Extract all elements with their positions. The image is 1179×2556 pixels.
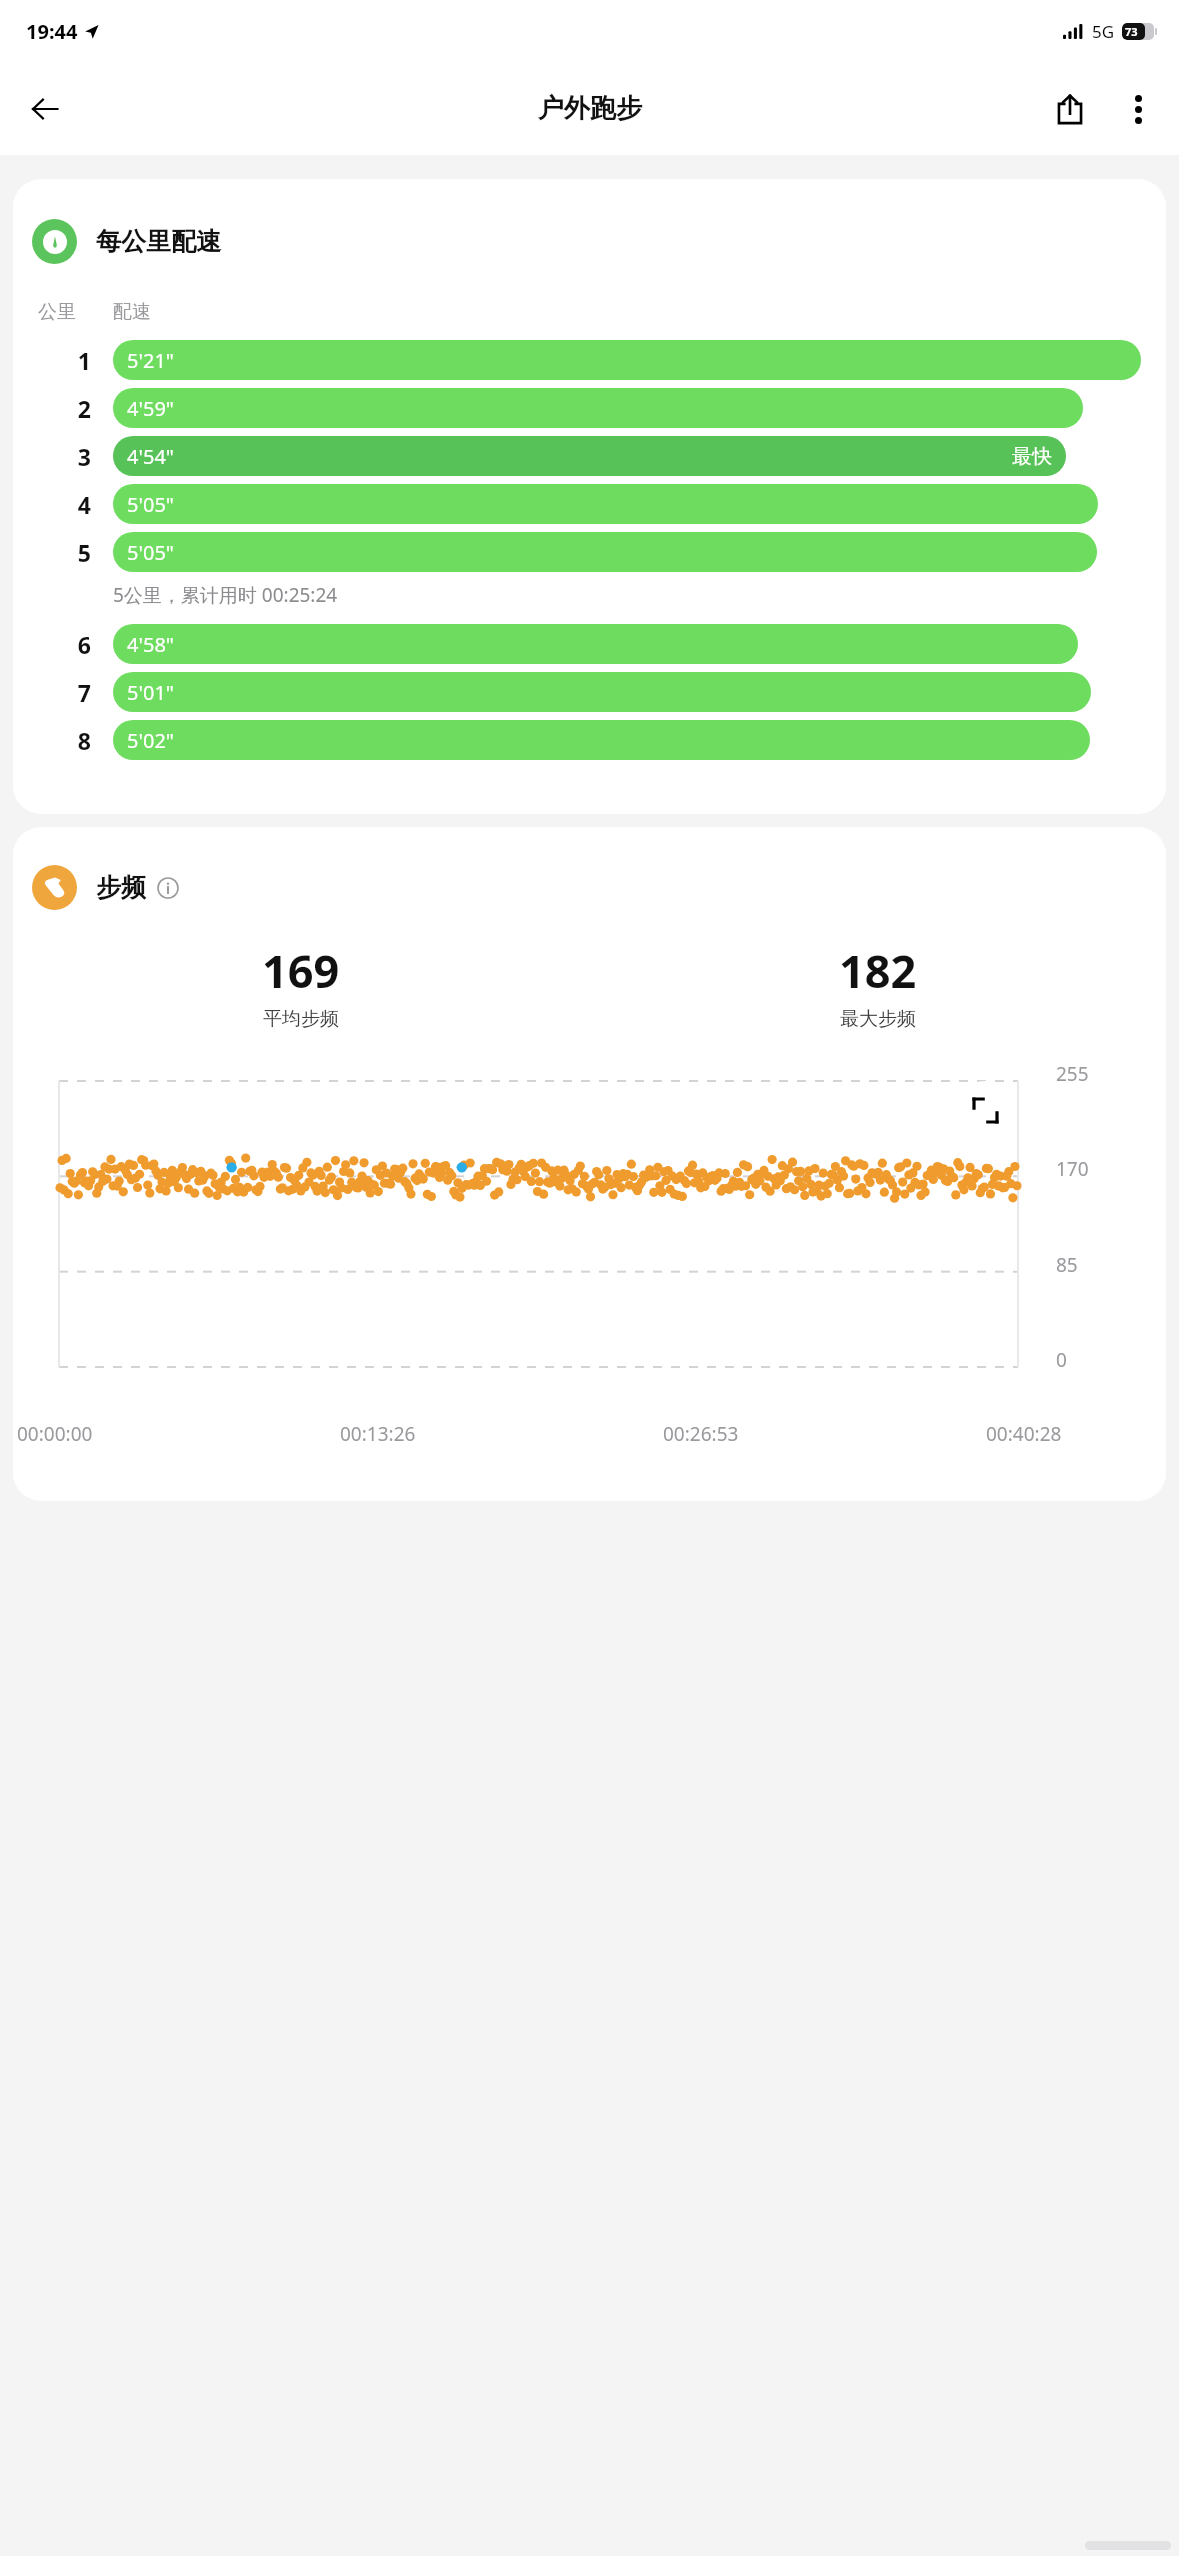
staticText: 7	[38, 677, 91, 708]
staticText: 公里	[38, 300, 91, 324]
staticText: 00:00:00	[17, 1421, 93, 1447]
button[interactable]: Info	[155, 875, 181, 901]
staticText: 6	[38, 629, 91, 660]
button[interactable]: 8	[38, 720, 1141, 760]
staticText: 19:44	[26, 18, 78, 45]
staticText: 步频	[96, 872, 146, 903]
staticText: 4'54"	[127, 443, 174, 470]
button[interactable]: 1	[38, 340, 1141, 380]
button[interactable]: 5	[38, 532, 1141, 572]
staticText: 4'59"	[127, 395, 174, 422]
button[interactable]: 3	[38, 436, 1141, 476]
staticText: 配速	[113, 300, 151, 324]
staticText: 最大步频	[840, 1007, 916, 1031]
button[interactable]: Expand chart	[956, 1081, 1014, 1139]
staticText: 每公里配速	[96, 226, 221, 257]
staticText: 5公里，累计用时 00:25:24	[113, 582, 338, 608]
staticText: 0	[1056, 1347, 1067, 1373]
staticText: 8	[38, 725, 91, 756]
staticText: 户外跑步	[538, 92, 642, 125]
button[interactable]: More options	[1111, 82, 1165, 136]
button[interactable]: 7	[38, 672, 1141, 712]
staticText: 5'21"	[127, 347, 174, 374]
staticText: 平均步频	[263, 1007, 339, 1031]
staticText: 4'58"	[127, 631, 174, 658]
staticText: 169	[262, 940, 340, 1001]
staticText: 73	[1125, 24, 1138, 39]
staticText: 1	[38, 345, 91, 376]
staticText: 2	[38, 393, 91, 424]
staticText: 255	[1056, 1061, 1089, 1087]
button[interactable]: Back	[18, 82, 72, 136]
staticText: 5'01"	[127, 679, 174, 706]
button[interactable]: Share	[1043, 82, 1097, 136]
staticText: 5'02"	[127, 727, 174, 754]
staticText: 00:26:53	[663, 1421, 739, 1447]
staticText: 5	[38, 537, 91, 568]
staticText: 5'05"	[127, 539, 174, 566]
staticText: 00:13:26	[340, 1421, 416, 1447]
staticText: 5G	[1092, 20, 1115, 43]
button[interactable]: 4	[38, 484, 1141, 524]
staticText: 00:40:28	[986, 1421, 1062, 1447]
staticText: 最快	[1012, 444, 1052, 469]
staticText: 182	[839, 940, 917, 1001]
staticText: 3	[38, 441, 91, 472]
staticText: 85	[1056, 1252, 1078, 1278]
staticText: 5'05"	[127, 491, 174, 518]
button[interactable]: 2	[38, 388, 1141, 428]
button[interactable]: 6	[38, 624, 1141, 664]
staticText: 4	[38, 489, 91, 520]
staticText: 170	[1056, 1156, 1089, 1182]
